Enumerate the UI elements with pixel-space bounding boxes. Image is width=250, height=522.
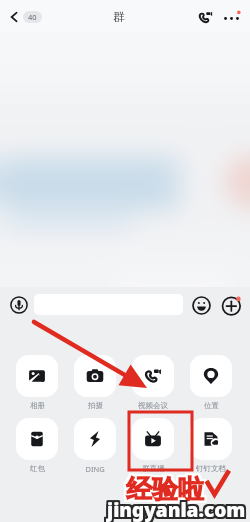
other: Back	[8, 11, 20, 23]
staticText: 群	[113, 9, 125, 24]
staticText: 经验啦	[124, 475, 202, 508]
button[interactable]: 钉钉文档	[182, 418, 240, 473]
button[interactable]: More	[218, 4, 244, 30]
staticText: 经验啦	[124, 471, 202, 504]
button[interactable]: More actions	[220, 293, 244, 317]
button[interactable]: Video call	[193, 5, 217, 29]
staticText: jingyanla.com	[107, 495, 246, 521]
staticText: 群直播	[142, 464, 165, 473]
staticText: DING	[85, 464, 105, 474]
staticText: jingyanla.com	[107, 497, 246, 522]
staticText: 视频会议	[138, 401, 168, 410]
staticText: jingyanla.com	[109, 497, 248, 522]
staticText: 拍摄	[88, 401, 103, 410]
staticText: 经验啦	[128, 473, 206, 506]
staticText: 经验啦	[126, 475, 204, 508]
button[interactable]: Emoji	[190, 294, 212, 316]
staticText: 经验啦	[126, 471, 204, 504]
button[interactable]: Voice input	[8, 294, 30, 316]
staticText: jingyanla.com	[109, 495, 248, 521]
button[interactable]: 视频会议	[124, 355, 182, 410]
staticText: 位置	[204, 401, 219, 410]
staticText: 经验啦	[124, 473, 202, 506]
staticText: jingyanla.com	[105, 497, 244, 522]
button[interactable]: 位置	[182, 355, 240, 410]
staticText: 相册	[30, 401, 45, 410]
button[interactable]: Back	[0, 7, 46, 27]
staticText: jingyanla.com	[105, 499, 244, 522]
button[interactable]: 红包	[8, 418, 66, 473]
staticText: jingyanla.com	[109, 499, 248, 522]
staticText: jingyanla.com	[105, 495, 244, 521]
staticText: 钉钉文档	[196, 464, 226, 473]
button[interactable]: 相册	[8, 355, 66, 410]
staticText: 经验啦	[128, 475, 206, 508]
staticText: 经验啦	[126, 473, 204, 506]
button[interactable]: DING	[66, 418, 124, 474]
button[interactable]: 拍摄	[66, 355, 124, 410]
staticText: jingyanla.com	[107, 499, 246, 522]
staticText: 经验啦	[128, 471, 206, 504]
staticText: 红包	[30, 464, 45, 473]
staticText: 40	[28, 12, 37, 22]
button[interactable]: 群直播	[124, 418, 182, 473]
